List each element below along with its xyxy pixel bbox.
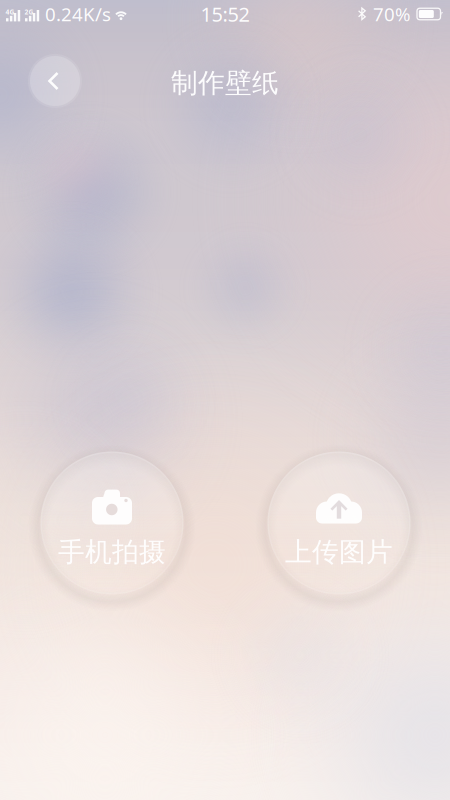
staticText: 手机拍摄	[58, 536, 166, 568]
staticText: 70%	[373, 2, 411, 26]
staticText: 制作壁纸	[171, 67, 279, 99]
staticText: 15:52	[200, 1, 249, 27]
staticText: 0.24K/s	[45, 2, 111, 26]
staticText: 上传图片	[285, 536, 393, 568]
button[interactable]: 手机拍摄	[28, 439, 196, 607]
button[interactable]: Back	[27, 53, 83, 109]
staticText: 2G	[24, 7, 33, 16]
staticText: 4G	[5, 7, 14, 16]
button[interactable]: 上传图片	[255, 439, 423, 607]
